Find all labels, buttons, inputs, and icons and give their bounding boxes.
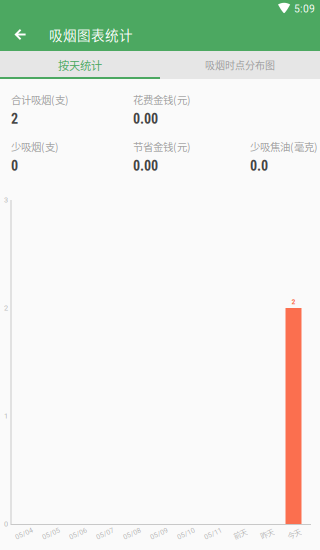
staticText: 按天统计 — [58, 57, 102, 73]
staticText: 0.00 — [133, 158, 158, 174]
staticText: 05/05 — [41, 529, 60, 538]
staticText: 0 — [4, 520, 8, 528]
staticText: 吸烟图表统计 — [49, 25, 133, 44]
staticText: 吸烟时点分布图 — [205, 58, 275, 72]
button[interactable]: Back — [5, 18, 35, 51]
button[interactable]: 按天统计 — [0, 51, 160, 79]
staticText: 05/06 — [68, 529, 87, 538]
button[interactable]: 吸烟时点分布图 — [160, 51, 320, 79]
staticText: 3 — [4, 196, 8, 204]
staticText: 0.0 — [250, 158, 268, 174]
staticText: 前天 — [233, 528, 247, 539]
staticText: 0 — [11, 158, 18, 174]
staticText: 1 — [4, 412, 8, 420]
staticText: 节省金钱(元) — [133, 139, 191, 154]
staticText: 05/10 — [176, 529, 195, 538]
staticText: 昨天 — [260, 528, 274, 539]
staticText: 少吸焦油(毫克) — [250, 139, 318, 154]
staticText: 2 — [4, 304, 8, 312]
staticText: 2 — [11, 111, 18, 127]
staticText: 05/04 — [14, 529, 33, 538]
staticText: 少吸烟(支) — [11, 139, 59, 154]
staticText: 合计吸烟(支) — [11, 92, 69, 107]
staticText: 05/07 — [95, 529, 114, 538]
staticText: 5:09 — [294, 3, 315, 15]
staticText: 今天 — [287, 528, 301, 539]
staticText: 2 — [291, 297, 295, 306]
staticText: 05/11 — [203, 529, 222, 538]
staticText: 0.00 — [133, 111, 158, 127]
staticText: 05/09 — [149, 529, 168, 538]
staticText: 05/08 — [122, 529, 141, 538]
staticText: 花费金钱(元) — [133, 92, 191, 107]
